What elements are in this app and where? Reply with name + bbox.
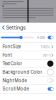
staticText: Serif [42, 53, 50, 57]
button[interactable]: Background Color [0, 68, 56, 76]
staticText: Scroll Mode [2, 86, 29, 92]
staticText: Background Color [2, 69, 42, 75]
button[interactable]: Font [0, 51, 56, 59]
button[interactable]: Scroll Mode [0, 85, 56, 93]
staticText: 100% [40, 44, 50, 49]
button[interactable]: Font Size [0, 43, 56, 51]
button[interactable]: Back to article [0, 23, 26, 32]
staticText: Font Size [2, 44, 21, 49]
staticText: Auto [37, 35, 45, 40]
button[interactable]: Text Color [0, 60, 56, 68]
button[interactable]: Toggle off [48, 79, 53, 82]
button[interactable]: Toggle on [48, 87, 53, 91]
button[interactable]: Toggle on [48, 36, 53, 39]
staticText: Settings [6, 24, 26, 31]
staticText: Font [2, 52, 11, 58]
button[interactable]: Night Mode [0, 76, 56, 85]
staticText: Night Mode [2, 78, 27, 83]
staticText: Text Color [2, 61, 22, 66]
